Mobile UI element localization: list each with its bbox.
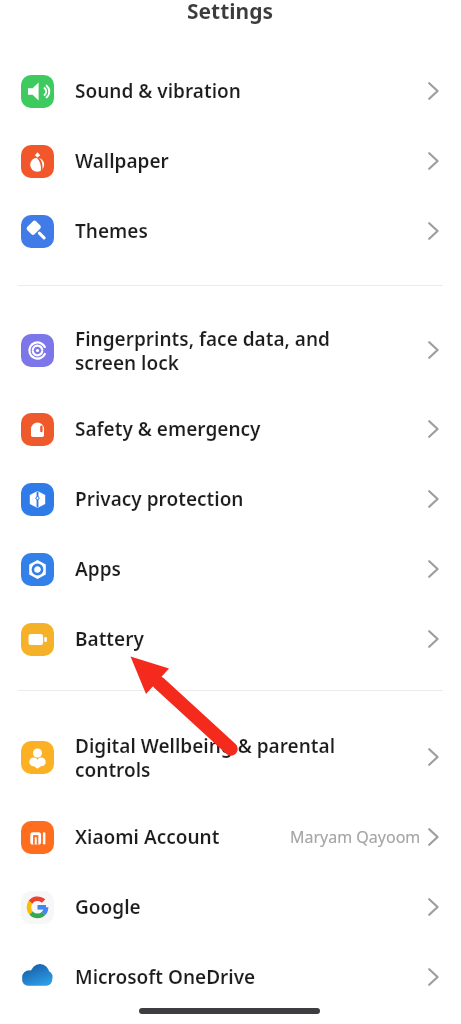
- button[interactable]: Google: [0, 872, 461, 942]
- staticText: Themes: [75, 218, 428, 244]
- staticText: Battery: [75, 626, 428, 652]
- staticText: Wallpaper: [75, 148, 428, 174]
- button[interactable]: Xiaomi Account: [0, 802, 461, 872]
- button[interactable]: Safety & emergency: [0, 394, 461, 464]
- button[interactable]: Microsoft OneDrive: [0, 942, 461, 1012]
- staticText: Google: [75, 894, 428, 920]
- staticText: Settings: [187, 0, 274, 26]
- staticText: Xiaomi Account: [75, 824, 290, 850]
- staticText: Microsoft OneDrive: [75, 964, 428, 990]
- button[interactable]: Privacy protection: [0, 464, 461, 534]
- staticText: Safety & emergency: [75, 416, 428, 442]
- button[interactable]: Wallpaper: [0, 126, 461, 196]
- staticText: Fingerprints, face data, and screen lock: [75, 326, 428, 375]
- button[interactable]: Battery: [0, 604, 461, 674]
- staticText: Sound & vibration: [75, 78, 428, 104]
- button[interactable]: Digital Wellbeing & parental controls: [0, 712, 461, 802]
- button[interactable]: Sound & vibration: [0, 56, 461, 126]
- staticText: Digital Wellbeing & parental controls: [75, 733, 428, 782]
- button[interactable]: Themes: [0, 196, 461, 266]
- staticText: Maryam Qayoom: [290, 826, 421, 848]
- button[interactable]: Apps: [0, 534, 461, 604]
- staticText: Privacy protection: [75, 486, 428, 512]
- button[interactable]: Fingerprints, face data, and screen lock: [0, 306, 461, 394]
- staticText: Apps: [75, 556, 428, 582]
